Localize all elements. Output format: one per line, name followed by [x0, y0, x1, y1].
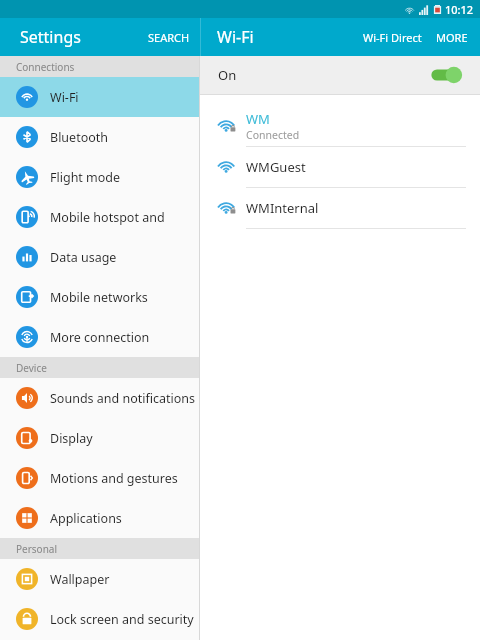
staticText: Device: [16, 361, 47, 375]
button[interactable]: WM: [200, 106, 480, 146]
staticText: Wallpaper: [50, 571, 110, 588]
button[interactable]: WMInternal: [200, 188, 480, 228]
staticText: WMGuest: [246, 158, 306, 176]
button[interactable]: Wi-Fi Direct: [355, 18, 430, 56]
button[interactable]: Mobile networks: [0, 277, 199, 317]
staticText: Bluetooth: [50, 129, 109, 146]
button[interactable]: SEARCH: [138, 18, 200, 56]
staticText: Sounds and notifications: [50, 390, 196, 407]
button[interactable]: Lock screen and security: [0, 599, 199, 639]
staticText: Lock screen and security: [50, 611, 194, 628]
button[interactable]: On: [200, 56, 480, 94]
button[interactable]: Wi-Fi: [0, 77, 199, 117]
staticText: Wi-Fi: [50, 89, 79, 106]
staticText: Connections: [16, 60, 75, 74]
staticText: Mobile networks: [50, 289, 148, 306]
button[interactable]: More connection settings: [0, 317, 199, 357]
staticText: MORE: [436, 30, 468, 45]
button[interactable]: Mobile hotspot and tether..: [0, 197, 199, 237]
button[interactable]: Data usage: [0, 237, 199, 277]
staticText: SEARCH: [148, 30, 190, 45]
staticText: Settings: [20, 26, 138, 48]
staticText: Wi-Fi Direct: [363, 30, 422, 45]
button[interactable]: Sounds and notifications: [0, 378, 199, 418]
staticText: Motions and gestures: [50, 470, 178, 487]
button[interactable]: Bluetooth: [0, 117, 199, 157]
other: Wi-Fi toggle: [428, 66, 462, 84]
button[interactable]: Display: [0, 418, 199, 458]
staticText: Connected: [246, 128, 300, 142]
button[interactable]: WMGuest: [200, 147, 480, 187]
staticText: Data usage: [50, 249, 117, 266]
staticText: On: [218, 66, 237, 84]
button[interactable]: MORE: [430, 18, 480, 56]
staticText: 10:12: [445, 2, 474, 17]
staticText: WM: [246, 110, 270, 128]
staticText: Wi-Fi: [217, 26, 355, 48]
button[interactable]: Flight mode: [0, 157, 199, 197]
staticText: Display: [50, 430, 93, 447]
button[interactable]: Applications: [0, 498, 199, 538]
staticText: WMInternal: [246, 199, 319, 217]
button[interactable]: Motions and gestures: [0, 458, 199, 498]
staticText: Personal: [16, 542, 58, 556]
staticText: Flight mode: [50, 169, 121, 186]
button[interactable]: Wallpaper: [0, 559, 199, 599]
staticText: Applications: [50, 510, 122, 527]
staticText: More connection settings: [50, 329, 199, 346]
staticText: Mobile hotspot and tether..: [50, 209, 199, 226]
